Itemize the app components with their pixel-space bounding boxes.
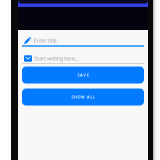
staticText: Enter title [33, 37, 56, 44]
button[interactable]: SAVE [22, 66, 144, 83]
staticText: SAVE [77, 72, 89, 78]
staticText: SHOW ALL [71, 94, 95, 100]
staticText: Start writing here... [34, 55, 78, 62]
button[interactable]: SHOW ALL [22, 88, 144, 105]
button[interactable]: Start writing here... [22, 54, 144, 64]
button[interactable]: Enter title [22, 36, 144, 47]
